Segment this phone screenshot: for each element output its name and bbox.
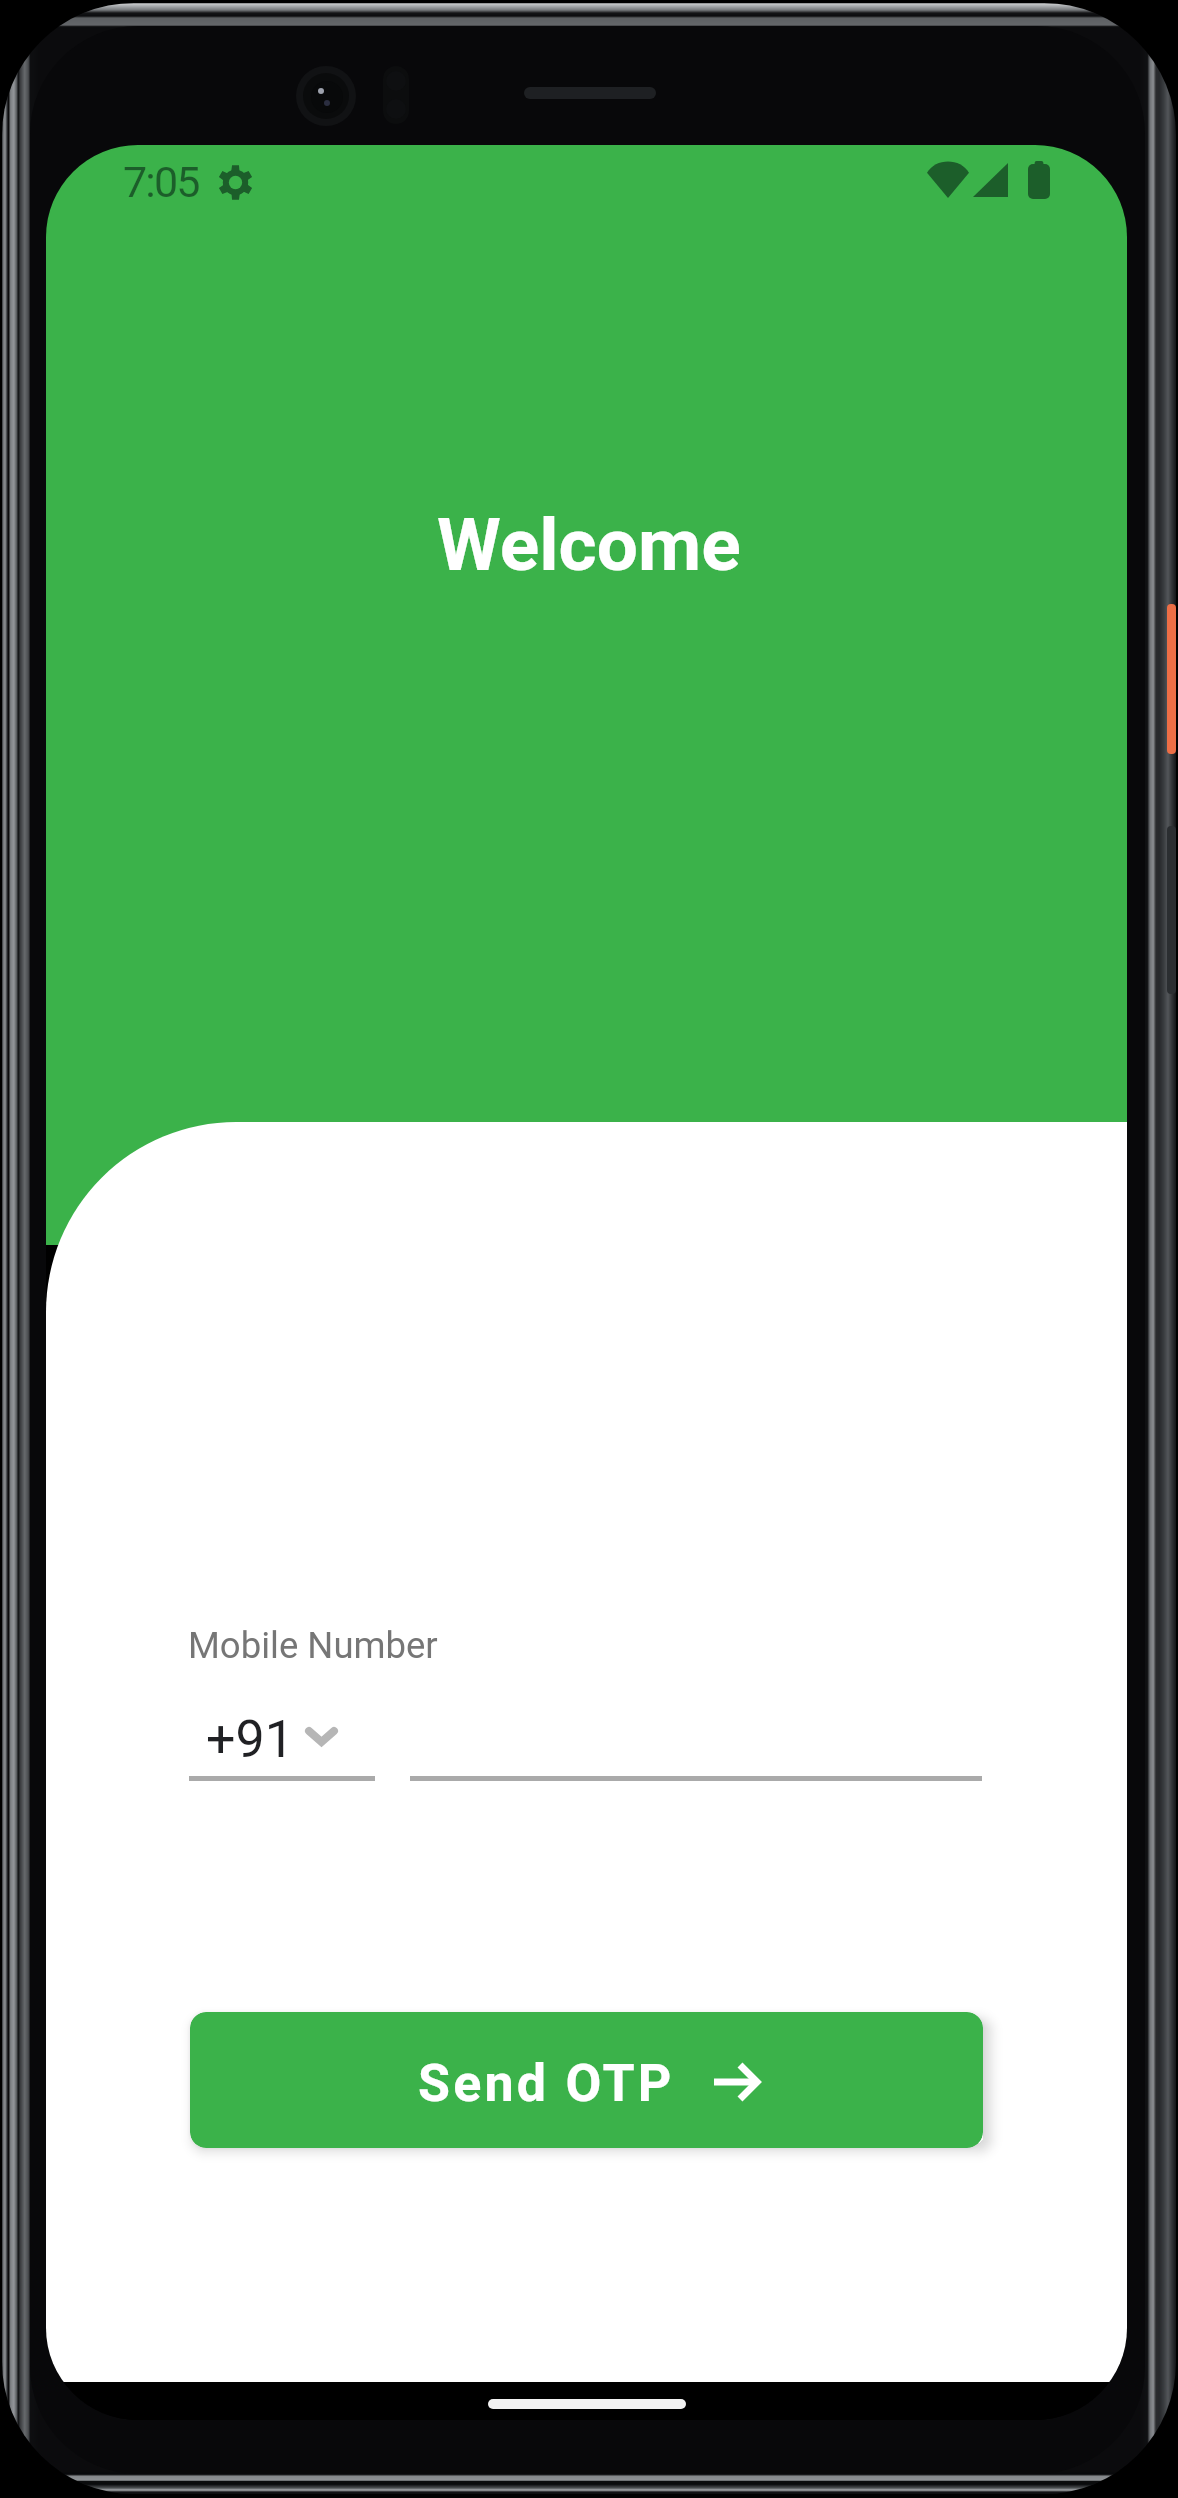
- button[interactable]: Mobile number input: [410, 1709, 982, 1781]
- staticText: Welcome: [437, 502, 741, 588]
- staticText: 7:05: [123, 157, 199, 207]
- other: Choose country code: [305, 1727, 338, 1747]
- staticText: Send OTP: [418, 2053, 675, 2114]
- staticText: +91: [206, 1709, 294, 1770]
- staticText: Mobile Number: [188, 1624, 438, 1667]
- button[interactable]: +91: [187, 1709, 377, 1781]
- button[interactable]: Send OTP: [190, 2012, 983, 2148]
